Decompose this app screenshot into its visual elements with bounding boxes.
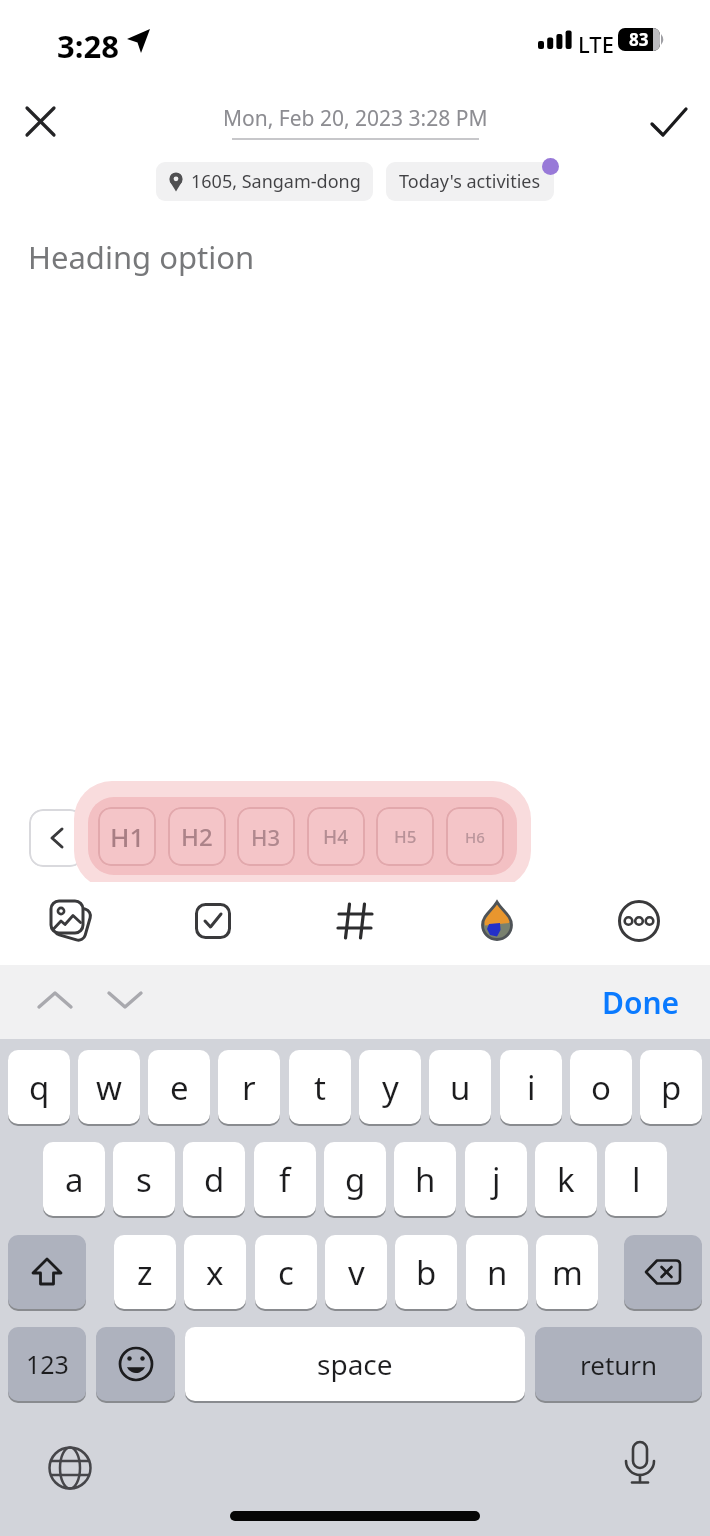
button[interactable]	[100, 972, 150, 1028]
staticText: space	[317, 1345, 393, 1383]
button[interactable]: v	[325, 1235, 387, 1309]
button[interactable]: f	[254, 1142, 316, 1216]
button[interactable]: H5	[376, 807, 434, 866]
staticText: LTE	[578, 29, 614, 59]
staticText: o	[591, 1065, 611, 1110]
button[interactable]: return	[535, 1327, 702, 1401]
staticText: y	[382, 1065, 399, 1110]
staticText: x	[206, 1250, 224, 1295]
staticText: 83	[629, 28, 649, 51]
staticText: H3	[251, 822, 281, 852]
button[interactable]: H4	[307, 807, 365, 866]
staticText: n	[487, 1250, 508, 1295]
button[interactable]: r	[218, 1050, 280, 1124]
staticText: a	[65, 1157, 84, 1202]
button[interactable]	[610, 1434, 670, 1494]
button[interactable]	[624, 1235, 702, 1309]
button[interactable]: H3	[237, 807, 295, 866]
staticText: c	[278, 1250, 294, 1295]
button[interactable]: j	[465, 1142, 527, 1216]
button[interactable]	[96, 1327, 175, 1401]
staticText: z	[137, 1250, 153, 1295]
staticText: H4	[323, 824, 349, 850]
staticText: H5	[394, 825, 417, 848]
staticText: v	[348, 1250, 365, 1295]
button[interactable]: Done	[572, 972, 710, 1033]
button[interactable]: y	[359, 1050, 421, 1124]
staticText: i	[527, 1065, 536, 1110]
staticText: t	[314, 1065, 326, 1110]
staticText: u	[450, 1065, 471, 1110]
button[interactable]: i	[500, 1050, 562, 1124]
button[interactable]: q	[8, 1050, 70, 1124]
button[interactable]: u	[429, 1050, 491, 1124]
button[interactable]: l	[605, 1142, 667, 1216]
button[interactable]: s	[113, 1142, 175, 1216]
button[interactable]: Mon, Feb 20, 2023 3:28 PM	[0, 104, 710, 140]
button[interactable]: 123	[8, 1327, 86, 1401]
staticText: w	[96, 1065, 122, 1110]
staticText: Heading option	[28, 236, 255, 278]
staticText: p	[661, 1065, 682, 1110]
button[interactable]	[29, 809, 84, 867]
staticText: H6	[465, 827, 485, 847]
button[interactable]	[468, 892, 526, 950]
button[interactable]: p	[640, 1050, 702, 1124]
button[interactable]: k	[535, 1142, 597, 1216]
button[interactable]: z	[114, 1235, 176, 1309]
button[interactable]: e	[148, 1050, 210, 1124]
button[interactable]: H1	[98, 807, 156, 866]
button[interactable]: space	[185, 1327, 525, 1401]
button[interactable]: d	[183, 1142, 245, 1216]
staticText: j	[492, 1157, 501, 1202]
button[interactable]: x	[184, 1235, 246, 1309]
button[interactable]: g	[324, 1142, 386, 1216]
staticText: Done	[602, 982, 680, 1023]
staticText: e	[170, 1065, 189, 1110]
staticText: f	[279, 1157, 291, 1202]
staticText: Mon, Feb 20, 2023 3:28 PM	[223, 104, 488, 133]
staticText: r	[242, 1065, 256, 1110]
button[interactable]: H6	[446, 807, 504, 866]
staticText: m	[552, 1250, 583, 1295]
staticText: 1605, Sangam-dong	[191, 169, 361, 194]
button[interactable]	[14, 95, 66, 147]
staticText: h	[415, 1157, 436, 1202]
button[interactable]: n	[466, 1235, 528, 1309]
staticText: l	[632, 1157, 641, 1202]
staticText: s	[136, 1157, 152, 1202]
button[interactable]	[640, 92, 698, 150]
staticText: Today's activities	[399, 169, 541, 194]
button[interactable]	[40, 1438, 100, 1498]
staticText: b	[416, 1250, 437, 1295]
staticText: 123	[26, 1347, 69, 1381]
button[interactable]	[610, 892, 668, 950]
button[interactable]	[8, 1235, 86, 1309]
button[interactable]: o	[570, 1050, 632, 1124]
staticText: d	[204, 1157, 225, 1202]
button[interactable]: h	[394, 1142, 456, 1216]
button[interactable]	[42, 892, 100, 950]
button[interactable]: H2	[168, 807, 226, 866]
button[interactable]	[326, 892, 384, 950]
button[interactable]: 1605, Sangam-dong	[156, 162, 373, 201]
staticText: k	[557, 1157, 575, 1202]
button[interactable]	[30, 972, 80, 1028]
staticText: q	[29, 1065, 50, 1110]
staticText: return	[580, 1347, 658, 1382]
button[interactable]: Today's activities	[386, 162, 554, 201]
staticText: H1	[110, 819, 145, 854]
button[interactable]: b	[395, 1235, 457, 1309]
staticText: 3:28	[57, 25, 119, 67]
button[interactable]: w	[78, 1050, 140, 1124]
button[interactable]	[184, 892, 242, 950]
staticText: g	[345, 1157, 366, 1202]
button[interactable]: c	[255, 1235, 317, 1309]
button[interactable]: a	[43, 1142, 105, 1216]
button[interactable]: m	[536, 1235, 598, 1309]
staticText: H2	[181, 820, 213, 853]
button[interactable]: t	[289, 1050, 351, 1124]
